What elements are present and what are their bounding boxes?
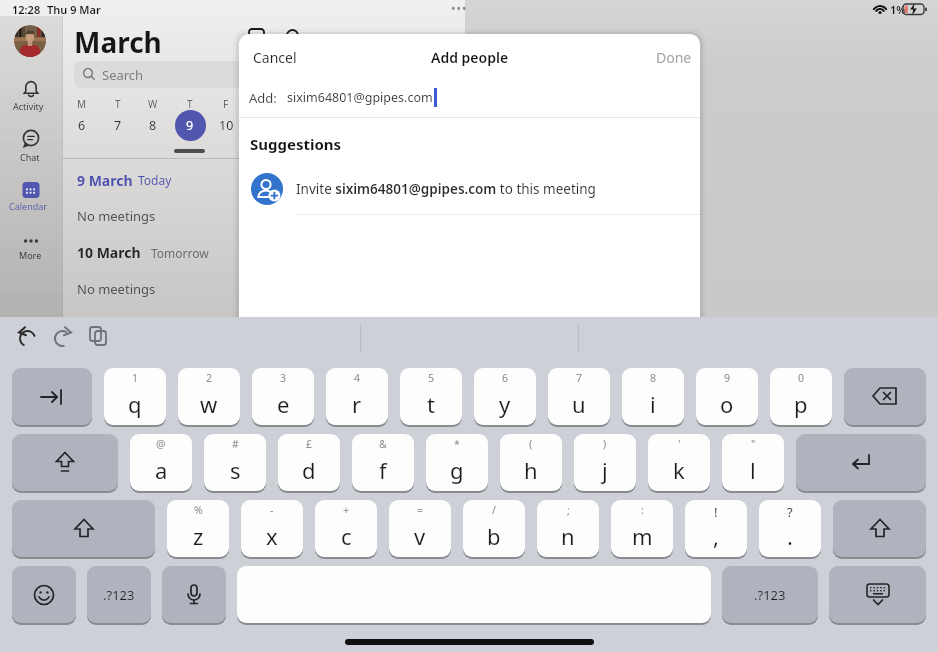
button[interactable]: 2	[178, 368, 240, 425]
button[interactable]	[175, 110, 206, 141]
staticText: 1	[132, 371, 139, 385]
button[interactable]	[796, 434, 926, 491]
staticText: Calendar	[9, 200, 47, 212]
staticText: +	[343, 503, 350, 517]
button[interactable]: 8	[622, 368, 684, 425]
staticText: 5	[428, 371, 435, 385]
button[interactable]: @	[130, 434, 192, 491]
button[interactable]	[12, 368, 92, 425]
staticText: Invite sixim64801@gpipes.com to this mee…	[296, 180, 596, 198]
button[interactable]: Search	[74, 61, 460, 88]
staticText: d	[302, 455, 316, 485]
button[interactable]	[11, 227, 51, 255]
staticText: 12:28	[12, 2, 41, 17]
staticText: W	[148, 97, 158, 111]
staticText: *	[454, 437, 460, 451]
button[interactable]: 7	[548, 368, 610, 425]
button[interactable]: £	[278, 434, 340, 491]
staticText: m	[632, 521, 653, 551]
button[interactable]: *	[426, 434, 488, 491]
staticText: b	[487, 521, 501, 551]
button[interactable]	[11, 75, 51, 103]
button[interactable]: &	[352, 434, 414, 491]
button[interactable]	[12, 566, 76, 623]
staticText: -	[270, 503, 274, 517]
button[interactable]: 5	[400, 368, 462, 425]
button[interactable]: Invite sixim64801@gpipes.com to this mee…	[239, 166, 700, 212]
staticText: &	[379, 437, 387, 451]
staticText: M	[77, 97, 87, 111]
button[interactable]: (	[500, 434, 562, 491]
button[interactable]: :	[611, 500, 673, 557]
staticText: 0	[798, 371, 805, 385]
button[interactable]: 0	[770, 368, 832, 425]
button[interactable]	[12, 500, 155, 557]
button[interactable]: 4	[326, 368, 388, 425]
button[interactable]: )	[574, 434, 636, 491]
button[interactable]: .?123	[87, 566, 151, 623]
button[interactable]: 3	[252, 368, 314, 425]
button[interactable]: =	[389, 500, 451, 557]
staticText: j	[602, 455, 608, 485]
staticText: c	[341, 521, 352, 551]
staticText: r	[352, 389, 362, 419]
staticText: ;	[567, 503, 570, 517]
button[interactable]: #	[204, 434, 266, 491]
staticText: Activity	[13, 100, 44, 112]
staticText: =	[417, 503, 424, 517]
staticText: F	[223, 97, 229, 111]
staticText: 9	[724, 371, 731, 385]
staticText: March	[74, 23, 162, 61]
staticText: @	[156, 437, 166, 451]
button[interactable]: 1	[104, 368, 166, 425]
button[interactable]	[14, 25, 46, 57]
staticText: Chat	[20, 151, 40, 163]
staticText: s	[230, 455, 241, 485]
staticText: k	[673, 455, 685, 485]
staticText: #	[232, 437, 239, 451]
staticText: o	[720, 389, 734, 419]
button[interactable]: '	[648, 434, 710, 491]
button[interactable]	[833, 500, 926, 557]
staticText: q	[128, 389, 142, 419]
button[interactable]	[829, 566, 926, 623]
staticText: a	[155, 455, 168, 485]
button[interactable]: Done	[656, 48, 692, 67]
button[interactable]	[237, 566, 711, 623]
button[interactable]	[844, 368, 926, 425]
staticText: •••	[451, 0, 468, 16]
button[interactable]: .?123	[722, 566, 818, 623]
button[interactable]: 9	[696, 368, 758, 425]
staticText: 7	[114, 117, 122, 134]
button[interactable]: !	[685, 500, 747, 557]
staticText: u	[572, 389, 586, 419]
button[interactable]: 6	[474, 368, 536, 425]
staticText: e	[277, 389, 290, 419]
staticText: T	[115, 97, 121, 111]
button[interactable]	[162, 566, 226, 623]
staticText: Search	[102, 66, 144, 84]
button[interactable]: %	[167, 500, 229, 557]
staticText: n	[561, 521, 575, 551]
staticText: Cancel	[253, 48, 297, 67]
staticText: .	[787, 521, 793, 551]
button[interactable]: +	[315, 500, 377, 557]
button[interactable]	[11, 125, 51, 153]
staticText: sixim64801@gpipes.com	[287, 89, 433, 106]
staticText: 8	[149, 117, 157, 134]
button[interactable]: "	[722, 434, 784, 491]
button[interactable]	[12, 434, 118, 491]
staticText: (	[529, 437, 533, 451]
button[interactable]: -	[241, 500, 303, 557]
button[interactable]: Cancel	[253, 48, 297, 67]
staticText: h	[524, 455, 538, 485]
button[interactable]: ;	[537, 500, 599, 557]
staticText: 6	[502, 371, 509, 385]
staticText: 7	[576, 371, 583, 385]
staticText: :	[641, 503, 644, 517]
staticText: £	[306, 437, 313, 451]
button[interactable]: /	[463, 500, 525, 557]
button[interactable]	[11, 176, 51, 204]
button[interactable]: ?	[759, 500, 821, 557]
staticText: More	[19, 249, 42, 261]
